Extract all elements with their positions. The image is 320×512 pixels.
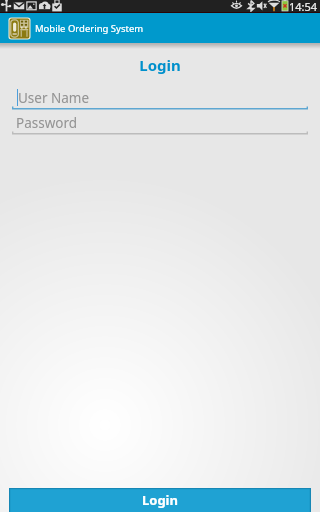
staticText: Mobile Ordering System xyxy=(35,22,144,35)
staticText: Password xyxy=(16,114,78,132)
staticText: User Name xyxy=(18,89,90,107)
staticText: Login xyxy=(0,55,320,75)
staticText: Login xyxy=(142,491,178,509)
button[interactable]: App logo xyxy=(8,17,31,40)
button[interactable]: Login xyxy=(9,488,311,512)
button[interactable]: Password xyxy=(12,112,308,137)
button[interactable]: User Name xyxy=(12,87,308,112)
staticText: 14:54 xyxy=(289,0,318,12)
